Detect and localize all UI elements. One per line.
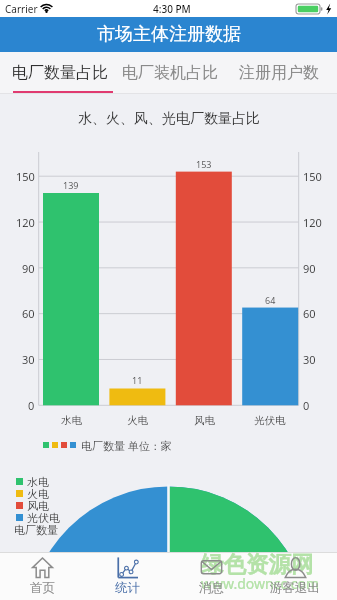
staticText: 30	[303, 352, 316, 367]
staticText: 光伏电	[27, 511, 60, 523]
staticText: 电厂数量 单位：家	[81, 438, 172, 452]
staticText: 139	[63, 179, 79, 191]
staticText: 首页	[30, 580, 55, 596]
button[interactable]: 统计	[85, 552, 169, 600]
staticText: 0	[28, 398, 35, 413]
staticText: 水、火、风、光电厂数量占比	[78, 110, 260, 128]
staticText: 游客退出	[270, 580, 320, 596]
staticText: 电厂数量占比	[12, 63, 108, 83]
staticText: 60	[303, 306, 316, 321]
staticText: 绿色资源网	[201, 550, 314, 578]
button[interactable]: 电厂装机占比	[115, 52, 224, 94]
staticText: www.downcc.com	[201, 574, 320, 593]
staticText: 消息	[199, 580, 224, 596]
staticText: 火电	[27, 487, 49, 499]
staticText: 水电	[27, 475, 49, 487]
staticText: 120	[303, 215, 322, 230]
staticText: 4:30 PM	[153, 2, 191, 16]
staticText: 150	[16, 169, 35, 184]
button[interactable]: 注册用户数	[224, 52, 333, 94]
staticText: Carrier	[5, 2, 38, 16]
button[interactable]: 消息	[169, 552, 253, 600]
staticText: 120	[16, 215, 35, 230]
button[interactable]: 游客退出	[253, 552, 337, 600]
button[interactable]: 首页	[0, 552, 85, 600]
staticText: 风电	[194, 414, 215, 427]
staticText: 30	[22, 352, 35, 367]
staticText: 水电	[61, 414, 82, 427]
staticText: 风电	[27, 499, 49, 511]
staticText: 153	[196, 158, 212, 170]
staticText: 90	[22, 261, 35, 276]
staticText: 0	[303, 398, 310, 413]
staticText: 统计	[115, 580, 140, 596]
staticText: 火电	[127, 414, 148, 427]
staticText: 11	[132, 374, 143, 386]
staticText: 60	[22, 306, 35, 321]
staticText: 光伏电	[254, 414, 286, 427]
staticText: 90	[303, 261, 316, 276]
staticText: 150	[303, 169, 322, 184]
staticText: 电厂装机占比	[122, 63, 218, 83]
button[interactable]: 电厂数量占比	[5, 52, 115, 94]
staticText: 市场主体注册数据	[97, 23, 241, 46]
staticText: 注册用户数	[239, 63, 319, 83]
staticText: 64	[265, 294, 276, 306]
staticText: 电厂数量	[14, 523, 58, 537]
